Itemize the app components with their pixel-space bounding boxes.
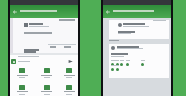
button[interactable]: Share target (58, 84, 80, 96)
button[interactable]: App (120, 63, 123, 66)
button[interactable] (109, 44, 169, 78)
button[interactable]: Back (103, 5, 171, 18)
button[interactable]: Share target (11, 67, 33, 79)
button[interactable]: App (116, 68, 119, 71)
button[interactable]: Share target (11, 84, 33, 96)
button[interactable]: Share target (36, 67, 58, 79)
other: Back (13, 10, 17, 14)
button[interactable]: App (141, 63, 144, 66)
button[interactable]: Back (10, 5, 78, 18)
button[interactable]: App (111, 63, 114, 66)
button[interactable] (10, 55, 78, 66)
button[interactable]: Share target (58, 67, 80, 79)
button[interactable]: Share target (36, 84, 58, 96)
other: Back (106, 10, 110, 14)
button[interactable]: App (111, 68, 114, 71)
button[interactable]: App (126, 63, 129, 66)
other: Send (68, 59, 73, 64)
button[interactable] (109, 20, 169, 39)
button[interactable]: App (116, 63, 119, 66)
